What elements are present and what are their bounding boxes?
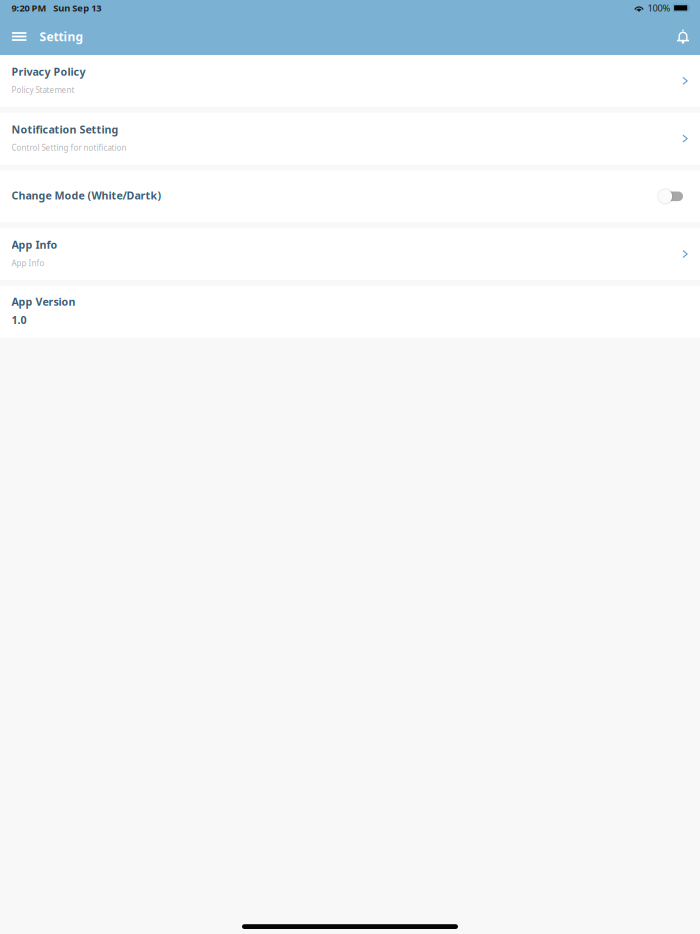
staticText: Policy Statement: [11, 85, 74, 95]
button[interactable]: Privacy Policy: [0, 55, 700, 107]
button[interactable]: App Info: [0, 228, 700, 280]
staticText: Change Mode (White/Dartk): [11, 188, 161, 202]
staticText: App Info: [11, 238, 57, 252]
button[interactable]: Change Mode (White/Dartk): [649, 170, 688, 222]
staticText: Sun Sep 13: [53, 2, 101, 14]
staticText: Privacy Policy: [11, 64, 85, 79]
button[interactable]: Notification Setting: [0, 113, 700, 164]
staticText: Setting: [39, 28, 83, 44]
staticText: 9:20 PM: [11, 2, 46, 14]
button[interactable]: App Version: [0, 286, 700, 338]
staticText: App Info: [11, 258, 44, 268]
button[interactable]: Change Mode (White/Dartk): [0, 170, 700, 222]
staticText: Control Setting for notification: [11, 142, 126, 153]
staticText: 100%: [647, 2, 670, 14]
staticText: Notification Setting: [11, 122, 118, 136]
staticText: App Version: [11, 294, 75, 309]
staticText: 1.0: [11, 313, 26, 327]
button[interactable]: Notifications: [665, 18, 700, 55]
button[interactable]: Menu: [0, 18, 39, 55]
